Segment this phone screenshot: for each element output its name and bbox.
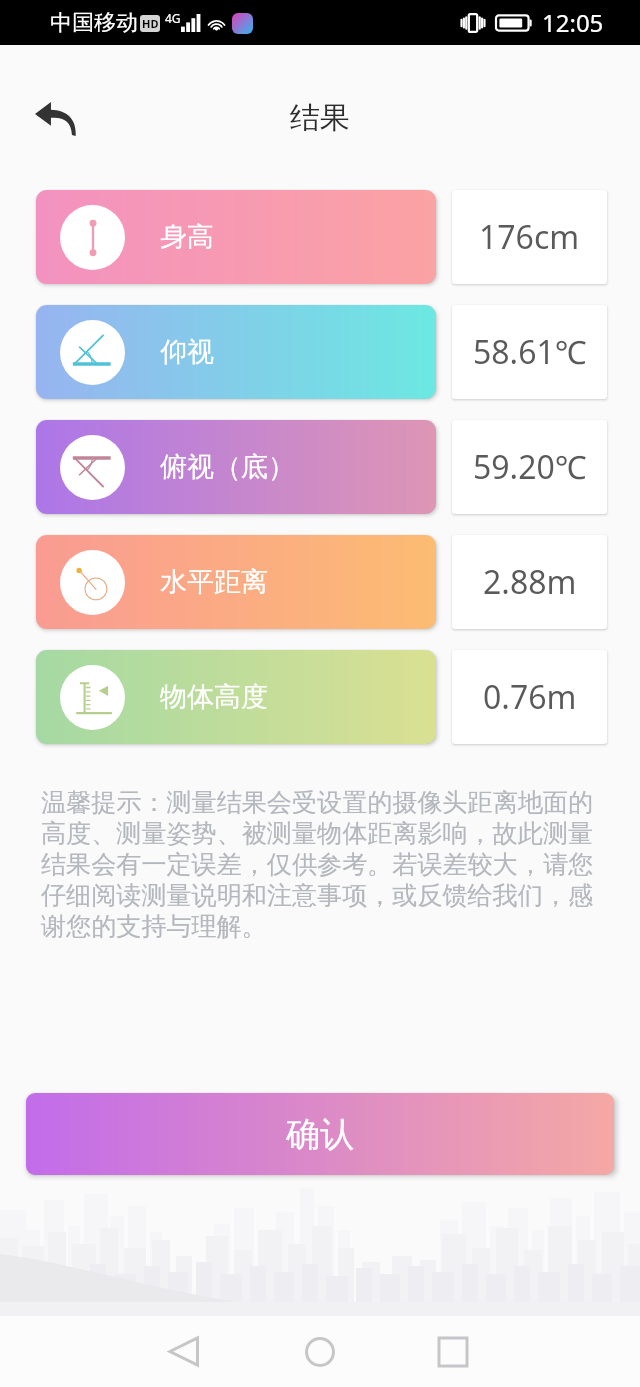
staticText: 58.61℃ (473, 330, 587, 374)
staticText: 仰视 (160, 335, 214, 369)
staticText: 确认 (286, 1113, 354, 1156)
staticText: 俯视（底） (160, 450, 295, 484)
button[interactable]: Back (20, 82, 92, 154)
staticText: 59.20℃ (473, 445, 587, 489)
button[interactable]: 0.76m (452, 650, 607, 744)
button[interactable]: Recents (411, 1316, 495, 1387)
button[interactable]: Back (142, 1316, 226, 1387)
staticText: HD (142, 16, 159, 31)
button[interactable]: 确认 (26, 1093, 614, 1175)
staticText: 0.76m (483, 675, 577, 719)
button[interactable]: 俯视（底） (36, 420, 436, 514)
staticText: 2.88m (483, 560, 577, 604)
button[interactable]: 58.61℃ (452, 305, 607, 399)
staticText: 176cm (479, 215, 580, 259)
staticText: 身高 (160, 220, 214, 254)
button[interactable]: 身高 (36, 190, 436, 284)
button[interactable]: 176cm (452, 190, 607, 284)
staticText: 温馨提示：测量结果会受设置的摄像头距离地面的高度、测量姿势、被测量物体距离影响，… (41, 787, 601, 943)
button[interactable]: 物体高度 (36, 650, 436, 744)
staticText: 中国移动 (50, 9, 138, 37)
staticText: 水平距离 (160, 565, 268, 599)
staticText: 12:05 (542, 6, 604, 39)
button[interactable]: 59.20℃ (452, 420, 607, 514)
button[interactable]: 2.88m (452, 535, 607, 629)
staticText: 物体高度 (160, 680, 268, 714)
button[interactable]: Home (278, 1316, 362, 1387)
staticText: 4G (165, 10, 181, 26)
button[interactable]: 水平距离 (36, 535, 436, 629)
button[interactable]: 仰视 (36, 305, 436, 399)
staticText: 结果 (290, 99, 350, 137)
